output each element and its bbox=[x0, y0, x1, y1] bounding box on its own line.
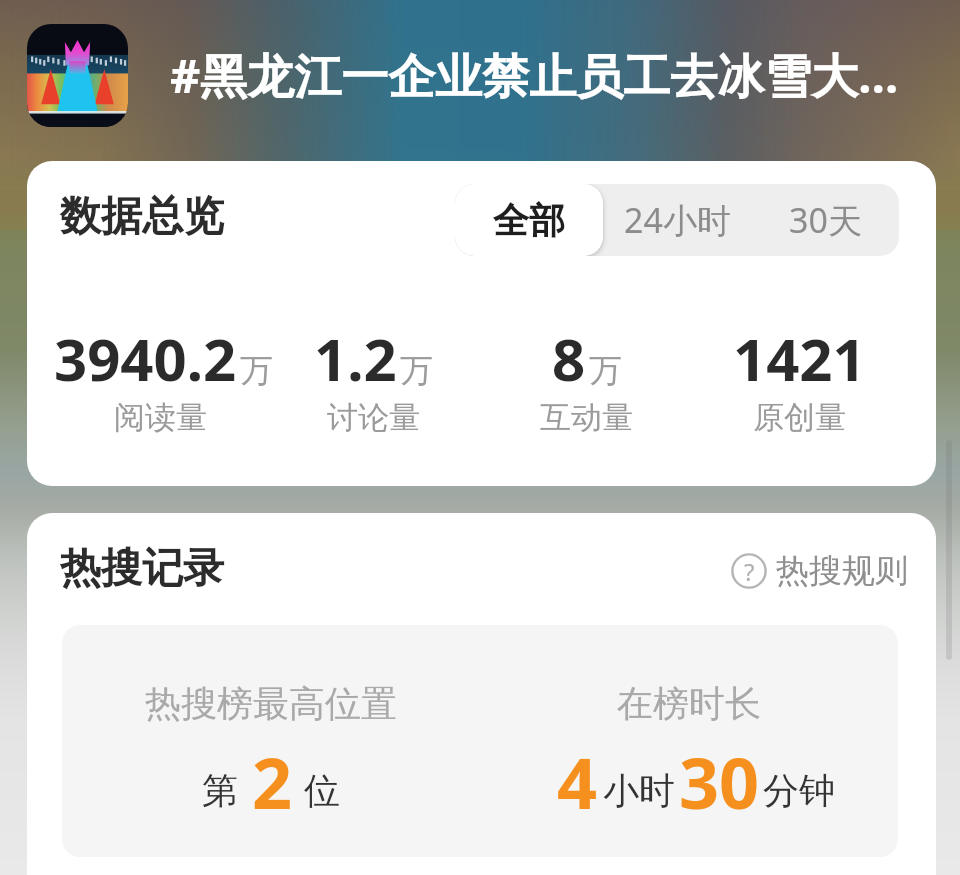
staticText: 8 bbox=[552, 319, 586, 398]
staticText: 原创量 bbox=[753, 398, 846, 437]
staticText: 24小时 bbox=[624, 197, 731, 243]
staticText: 阅读量 bbox=[114, 398, 207, 437]
staticText: #黑龙江一企业禁止员工去冰雪大… bbox=[170, 43, 899, 107]
button[interactable]: Topic cover image bbox=[27, 24, 128, 127]
staticText: 热搜榜最高位置 bbox=[145, 681, 397, 726]
staticText: ? bbox=[744, 555, 755, 588]
staticText: 全部 bbox=[493, 198, 565, 243]
staticText: 30天 bbox=[789, 197, 862, 243]
staticText: 第 bbox=[202, 768, 238, 813]
staticText: 万 bbox=[589, 350, 622, 392]
staticText: 位 bbox=[304, 768, 340, 813]
button[interactable]: 30天 bbox=[751, 184, 899, 256]
staticText: 热搜规则 bbox=[776, 550, 908, 592]
staticText: 30 bbox=[679, 734, 760, 829]
staticText: 2 bbox=[252, 734, 293, 829]
staticText: 讨论量 bbox=[327, 398, 420, 437]
staticText: 数据总览 bbox=[60, 191, 224, 243]
staticText: 4 bbox=[557, 734, 598, 829]
staticText: 1.2 bbox=[314, 319, 397, 398]
button[interactable]: 全部 bbox=[455, 184, 603, 256]
button[interactable]: ? bbox=[725, 544, 914, 598]
staticText: 分钟 bbox=[763, 768, 835, 813]
staticText: 热搜记录 bbox=[60, 543, 224, 595]
staticText: 3940.2 bbox=[54, 319, 237, 398]
button[interactable]: 24小时 bbox=[603, 184, 751, 256]
staticText: 1421 bbox=[733, 319, 866, 398]
staticText: 万 bbox=[400, 350, 433, 392]
staticText: 小时 bbox=[603, 768, 675, 813]
staticText: 互动量 bbox=[540, 398, 633, 437]
staticText: 在榜时长 bbox=[617, 681, 761, 726]
staticText: 万 bbox=[240, 350, 267, 392]
